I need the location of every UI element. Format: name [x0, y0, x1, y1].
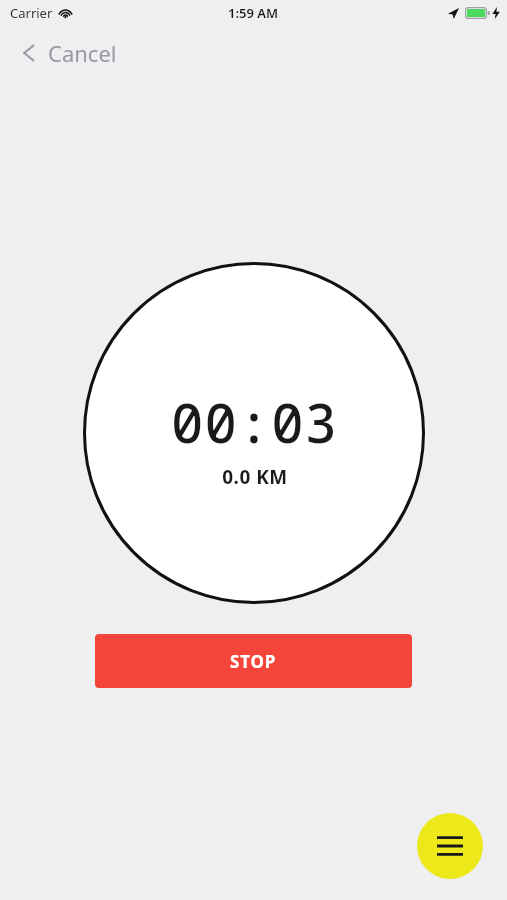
staticText: 00:03 — [171, 385, 338, 459]
staticText: 1:59 AM — [228, 4, 279, 22]
button[interactable]: STOP — [95, 634, 412, 688]
button[interactable]: Menu — [417, 813, 483, 879]
staticText: Cancel — [48, 38, 117, 68]
staticText: Carrier — [10, 4, 53, 22]
button[interactable]: Cancel — [14, 32, 125, 74]
staticText: STOP — [230, 650, 277, 673]
staticText: 0.0 KM — [222, 464, 288, 490]
